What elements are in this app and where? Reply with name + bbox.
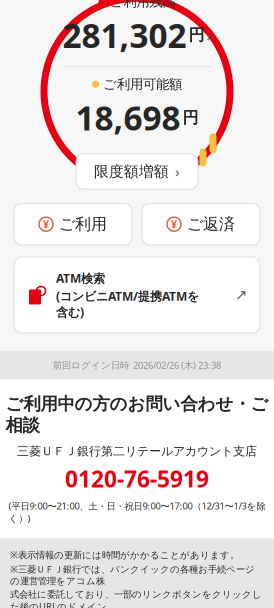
staticText: 前回ログイン日時 2026/02/26 (木) 23:38 [53,359,221,371]
staticText: 限度額増額 [94,162,169,180]
staticText: ※表示情報の更新には時間がかかることがあります。 [10,548,239,561]
staticText: ご利用残高 [109,0,175,10]
staticText: › [206,24,211,46]
staticText: ご返済 [187,214,235,234]
staticText: ATM検索 [56,270,105,286]
staticText: ↗ [235,287,247,303]
staticText: 式会社に委託しており、一部のリンクボタンをクリックした後のURLのドメイン [10,589,262,608]
staticText: (平日9:00〜21:00、土・日・祝日9:00〜17:00（12/31〜1/3… [8,500,265,524]
staticText: 円 [188,25,204,45]
staticText: 281,302 [62,13,186,57]
staticText: ご利用 [59,214,107,234]
staticText: 三菱ＵＦＪ銀行第二リテールアカウント支店 [17,444,257,459]
staticText: ¥ [171,217,177,231]
button[interactable]: ATM検索 [14,257,260,333]
button[interactable]: ¥ [142,203,260,245]
button[interactable]: 281,302 [62,13,211,57]
staticText: ¥ [43,217,49,231]
staticText: ※三菱ＵＦＪ銀行では、バンクイックの各種お手続ページの運営管理をアコム株 [10,563,255,587]
staticText: 円 [182,108,198,127]
button[interactable]: 限度額増額 [76,154,198,189]
button[interactable]: ¥ [14,203,132,245]
staticText: ご利用中の方のお問い合わせ・ご相談 [5,393,268,436]
staticText: (コンビニATM/提携ATMを含む) [56,288,199,320]
button[interactable]: 0120-76-5919 [55,459,219,494]
staticText: ご利用可能額 [103,76,182,92]
staticText: 0120-76-5919 [65,464,209,494]
staticText: › [175,162,180,181]
staticText: 18,698 [75,95,180,140]
